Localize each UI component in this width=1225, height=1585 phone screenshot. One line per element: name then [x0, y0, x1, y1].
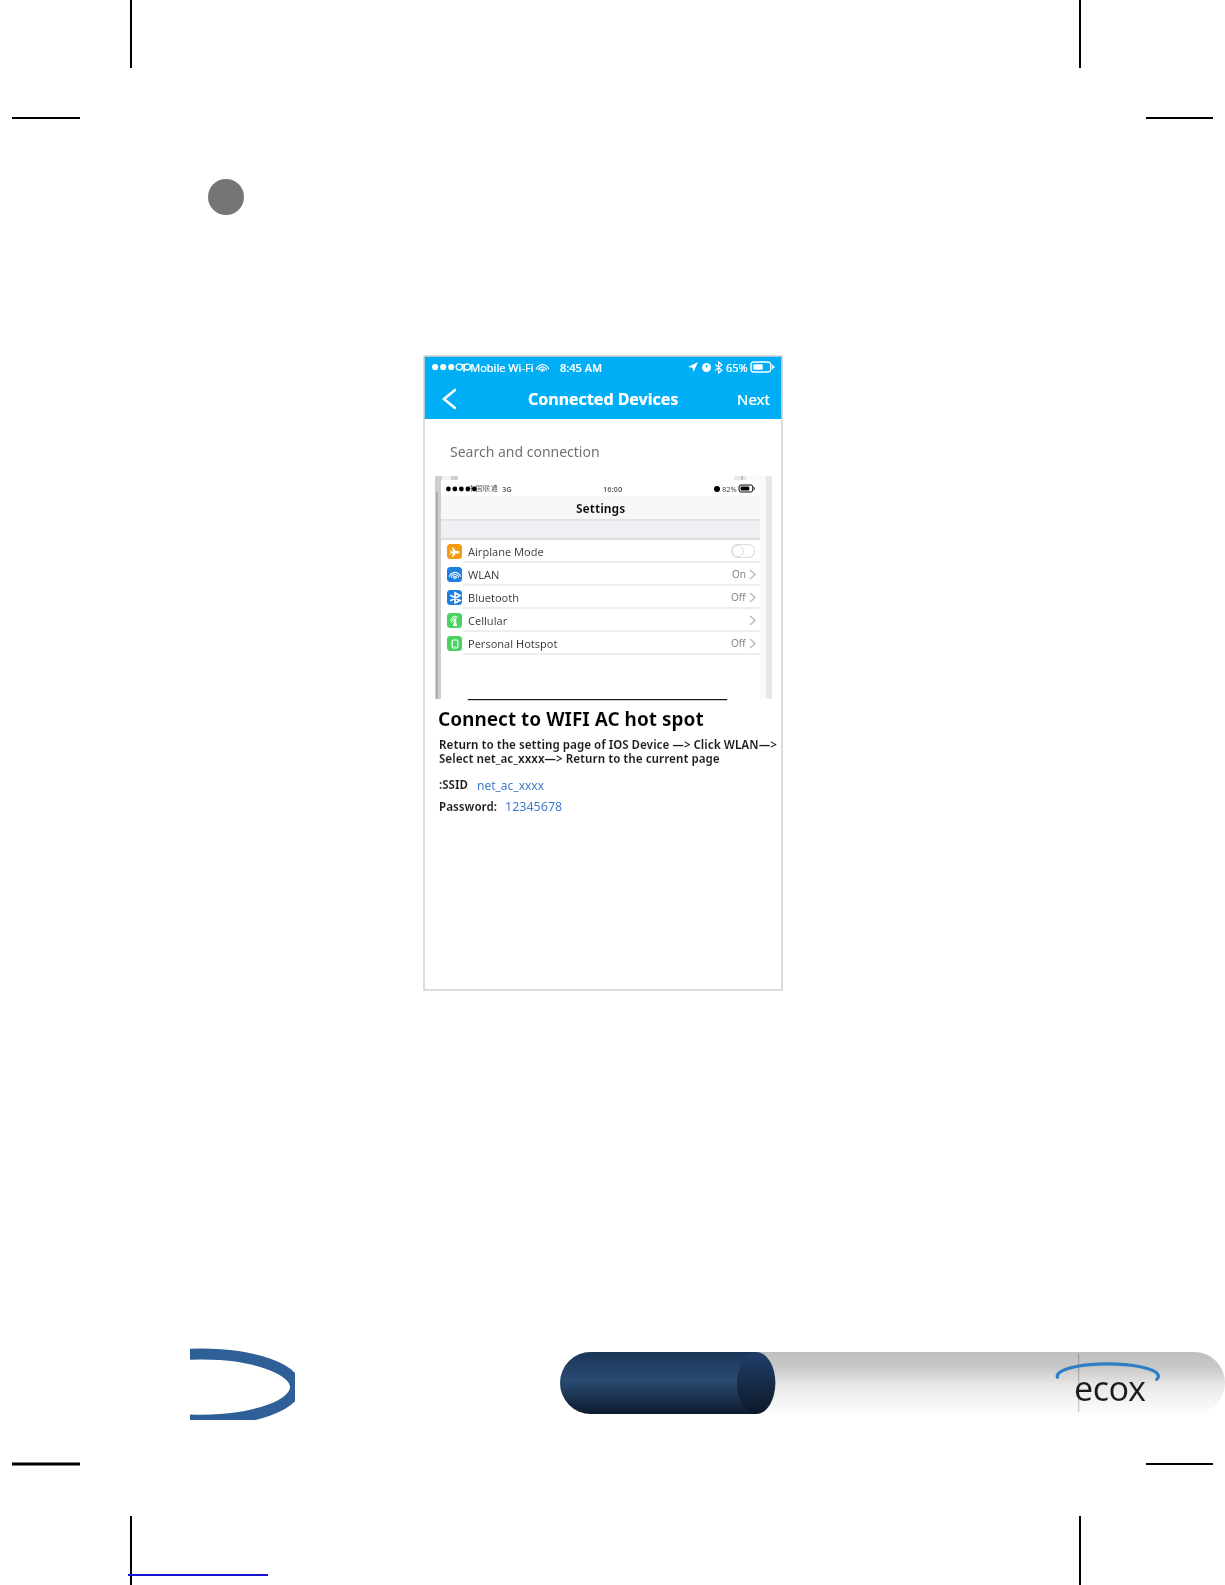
button[interactable]: Airplane Mode — [441, 540, 760, 563]
staticText: Password: — [439, 799, 498, 815]
staticText: T-Mobile Wi-Fi — [461, 360, 534, 375]
staticText: 65% — [726, 360, 748, 375]
button[interactable]: Bluetooth — [441, 586, 760, 609]
staticText: 中国联通 — [468, 484, 498, 493]
button[interactable]: Personal Hotspot — [441, 632, 760, 655]
staticText: 3G — [502, 484, 512, 494]
button[interactable]: Cellular — [441, 609, 760, 632]
staticText: Connect to WIFI AC hot spot — [438, 706, 704, 732]
staticText: Bluetooth — [468, 590, 520, 605]
button[interactable]: WLAN — [441, 563, 760, 586]
button[interactable]: Next — [733, 385, 774, 413]
staticText: net_ac_xxxx — [477, 777, 545, 793]
staticText: 8:45 AM — [560, 360, 603, 375]
staticText: Next — [737, 389, 770, 409]
staticText: Search and connection — [450, 442, 600, 461]
staticText: ecox — [1074, 1365, 1146, 1411]
staticText: 16:00 — [603, 484, 623, 494]
staticText: WLAN — [468, 567, 500, 582]
staticText: 82% — [722, 484, 737, 494]
staticText: Off — [731, 590, 746, 604]
staticText: Personal Hotspot — [468, 636, 558, 651]
staticText: Off — [731, 636, 746, 650]
staticText: :SSID — [439, 777, 468, 793]
staticText: 12345678 — [505, 798, 563, 815]
staticText: Return to the setting page of IOS Device… — [439, 737, 778, 766]
staticText: Connected Devices — [528, 388, 679, 410]
staticText: Cellular — [468, 613, 508, 628]
button[interactable]: Back — [434, 384, 464, 414]
staticText: Settings — [576, 500, 626, 516]
staticText: Airplane Mode — [468, 544, 544, 559]
staticText: On — [732, 567, 746, 581]
